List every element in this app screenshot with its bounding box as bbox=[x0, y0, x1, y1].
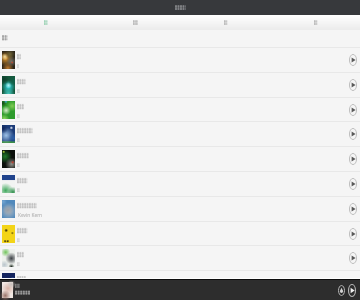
staticText: Kevin Kern bbox=[18, 212, 43, 219]
button[interactable] bbox=[90, 15, 180, 30]
button[interactable]: Kevin Kern bbox=[0, 197, 360, 221]
button[interactable]: Play bbox=[346, 280, 358, 300]
button[interactable]: Play bbox=[347, 197, 359, 221]
button[interactable]: Play bbox=[347, 122, 359, 146]
button[interactable]: Play bbox=[0, 98, 360, 122]
button[interactable] bbox=[270, 15, 360, 30]
button[interactable]: Play bbox=[347, 147, 359, 171]
button[interactable]: Play bbox=[347, 98, 359, 122]
button[interactable] bbox=[0, 270, 360, 281]
button[interactable]: Play bbox=[347, 222, 359, 246]
button[interactable] bbox=[180, 15, 270, 30]
button[interactable]: Play bbox=[0, 222, 360, 246]
button[interactable]: Play bbox=[0, 73, 360, 97]
button[interactable]: Play bbox=[347, 73, 359, 97]
button[interactable]: Play bbox=[347, 172, 359, 196]
button[interactable]: Play bbox=[0, 48, 360, 72]
button[interactable]: Play bbox=[0, 172, 360, 196]
button[interactable]: Play bbox=[347, 246, 359, 270]
button[interactable]: Play bbox=[0, 122, 360, 146]
button[interactable]: Volume bbox=[336, 280, 346, 300]
button[interactable] bbox=[0, 15, 90, 30]
button[interactable]: Play bbox=[0, 147, 360, 171]
button[interactable]: Play bbox=[0, 246, 360, 270]
button[interactable]: Play bbox=[347, 48, 359, 72]
